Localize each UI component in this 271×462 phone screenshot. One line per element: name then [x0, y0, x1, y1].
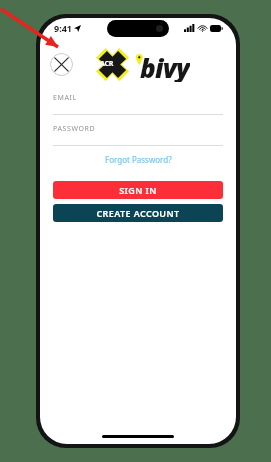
button[interactable]: SIGN IN	[53, 181, 223, 199]
staticText: CREATE ACCOUNT	[96, 207, 180, 219]
button[interactable]: Forgot Password?	[53, 154, 223, 165]
staticText: ACR	[100, 59, 114, 69]
button[interactable]: CREATE ACCOUNT	[53, 204, 223, 222]
button[interactable]: Close	[50, 53, 73, 76]
button[interactable]: EMAIL	[53, 93, 223, 115]
staticText: 9:41	[54, 22, 72, 34]
staticText: PASSWORD	[53, 124, 96, 134]
staticText: Forgot Password?	[105, 154, 172, 165]
button[interactable]: PASSWORD	[53, 124, 223, 146]
staticText: bivy	[140, 50, 190, 82]
staticText: SIGN IN	[119, 184, 157, 196]
staticText: EMAIL	[53, 93, 77, 103]
